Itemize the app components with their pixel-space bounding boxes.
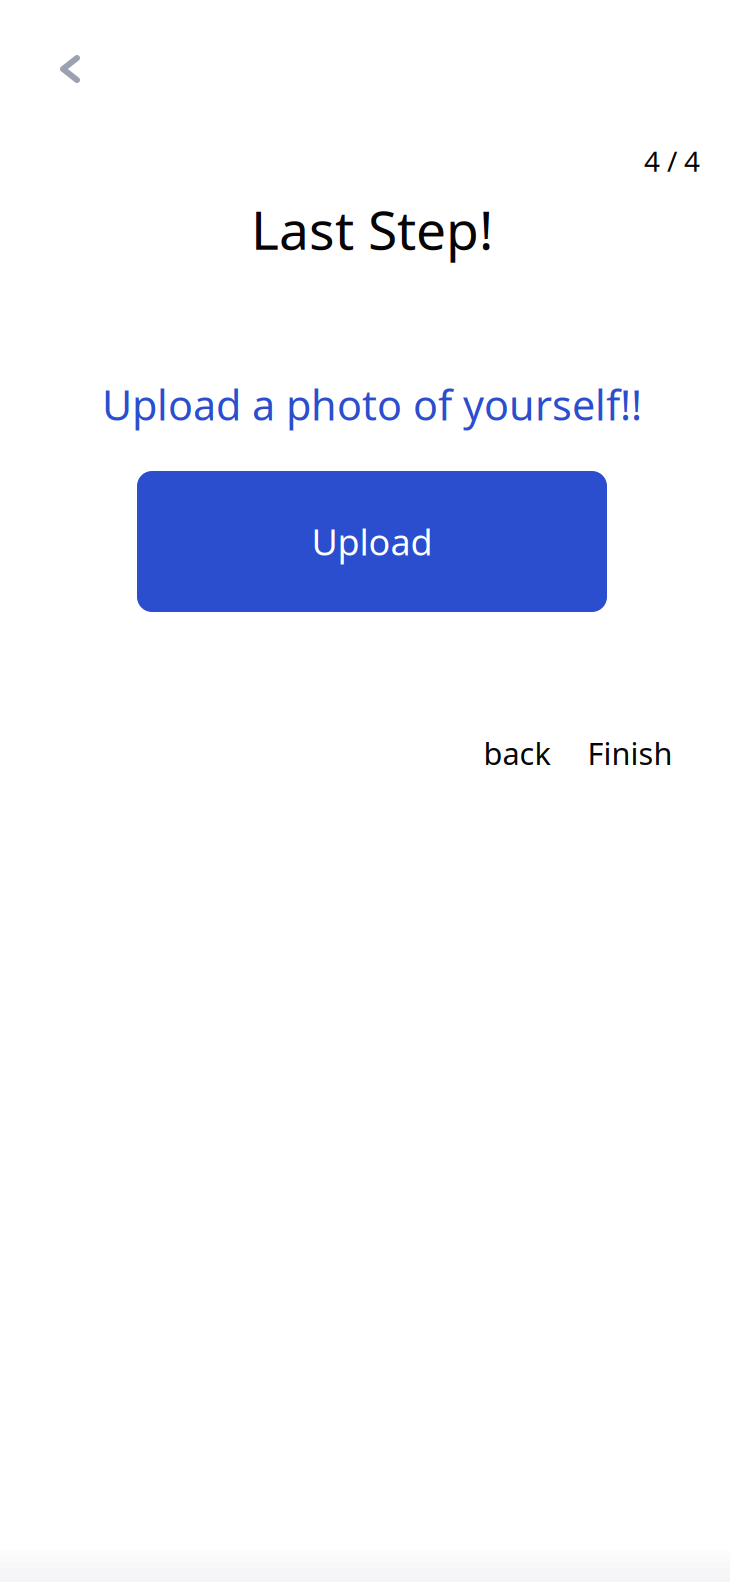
- button[interactable]: Finish: [585, 738, 675, 768]
- staticText: 4 / 4: [644, 142, 700, 180]
- staticText: Last Step!: [251, 194, 493, 264]
- staticText: Upload a photo of yourself!!: [102, 377, 642, 432]
- staticText: back: [483, 733, 550, 773]
- button[interactable]: Back: [48, 47, 92, 91]
- button[interactable]: Upload: [137, 471, 607, 612]
- staticText: Finish: [587, 733, 672, 773]
- button[interactable]: back: [481, 738, 553, 768]
- staticText: Upload: [311, 518, 432, 565]
